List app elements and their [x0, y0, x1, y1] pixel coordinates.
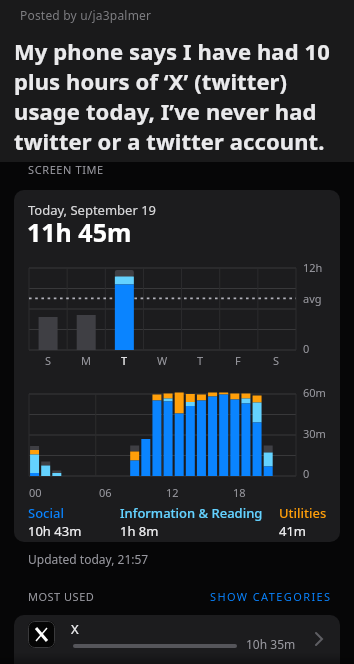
staticText: 06 — [99, 485, 112, 500]
staticText: 0 — [303, 466, 310, 481]
staticText: 00 — [29, 485, 42, 500]
staticText: 41m — [279, 522, 307, 540]
staticText: MOST USED — [28, 589, 95, 604]
staticText: 10h 43m — [28, 522, 82, 540]
staticText: S — [45, 353, 52, 368]
staticText: Information & Reading — [120, 504, 263, 522]
staticText: 12h — [303, 260, 323, 275]
staticText: 30m — [303, 426, 326, 441]
staticText: 10h 35m — [246, 636, 296, 652]
button[interactable]: X — [14, 615, 340, 664]
staticText: W — [157, 353, 168, 368]
button[interactable]: SHOW CATEGORIES — [208, 585, 330, 600]
staticText: X — [71, 620, 79, 638]
staticText: 12 — [166, 485, 179, 500]
staticText: Updated today, 21:57 — [28, 551, 149, 567]
staticText: T — [121, 353, 128, 368]
staticText: 0 — [303, 341, 310, 356]
staticText: avg — [303, 291, 322, 306]
staticText: 1h 8m — [120, 522, 159, 540]
staticText: Posted by u/ja3palmer — [20, 7, 152, 23]
button[interactable]: Today, September 19 — [14, 190, 340, 542]
staticText: Utilities — [279, 504, 327, 522]
staticText: 11h 45m — [27, 215, 132, 249]
staticText: 18 — [233, 485, 246, 500]
staticText: SCREEN TIME — [28, 162, 104, 177]
staticText: 60m — [303, 385, 326, 400]
staticText: Social — [28, 504, 64, 522]
staticText: M — [81, 353, 91, 368]
staticText: T — [197, 353, 204, 368]
staticText: F — [235, 353, 241, 368]
staticText: My phone says I have had 10 plus hours o… — [14, 36, 330, 156]
staticText: SHOW CATEGORIES — [210, 589, 332, 604]
staticText: Today, September 19 — [28, 201, 157, 219]
staticText: S — [273, 353, 280, 368]
